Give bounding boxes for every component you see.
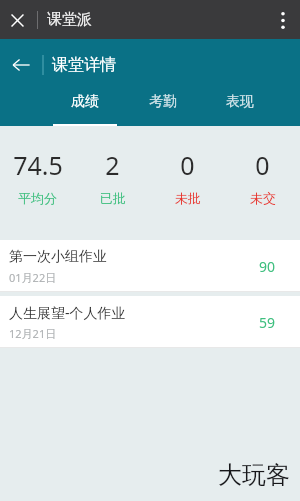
button[interactable]: Back	[5, 49, 37, 81]
button[interactable]: 0	[225, 126, 300, 240]
staticText: 课堂派	[47, 10, 92, 29]
staticText: 12月21日	[9, 326, 57, 341]
staticText: 74.5	[13, 148, 63, 182]
button[interactable]: 74.5	[0, 126, 75, 240]
button[interactable]: 0	[150, 126, 225, 240]
staticText: 考勤	[149, 93, 177, 111]
button[interactable]: 2	[75, 126, 150, 240]
button[interactable]: 人生展望-个人作业	[0, 296, 300, 348]
button[interactable]: 表现	[201, 91, 278, 126]
button[interactable]: 成绩	[46, 91, 124, 126]
staticText: 已批	[100, 190, 126, 206]
staticText: 大玩客	[218, 460, 290, 490]
staticText: 未批	[175, 190, 201, 206]
staticText: 未交	[250, 190, 276, 206]
staticText: 01月22日	[9, 270, 57, 285]
button[interactable]: 考勤	[124, 91, 201, 126]
staticText: 0	[180, 148, 195, 182]
staticText: 平均分	[18, 190, 57, 206]
button[interactable]: 第一次小组作业	[0, 240, 300, 292]
staticText: 表现	[226, 93, 254, 111]
staticText: 2	[105, 148, 120, 182]
staticText: 人生展望-个人作业	[9, 303, 126, 322]
staticText: 90	[259, 257, 276, 276]
button[interactable]: Close	[3, 6, 31, 34]
staticText: 成绩	[71, 93, 99, 111]
staticText: 第一次小组作业	[9, 248, 107, 266]
staticText: 0	[255, 148, 270, 182]
staticText: 课堂详情	[52, 55, 116, 75]
staticText: 59	[259, 313, 276, 332]
button[interactable]: More options	[268, 5, 298, 35]
